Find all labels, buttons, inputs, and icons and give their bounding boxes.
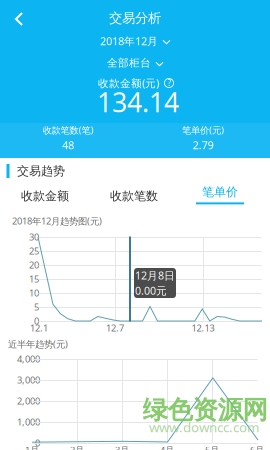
- button[interactable]: Back: [4, 5, 34, 33]
- staticText: 5月: [205, 444, 219, 450]
- staticText: 绿色资源网: [142, 394, 267, 425]
- button[interactable]: 全部柜台: [103, 53, 167, 72]
- staticText: 134.14: [97, 84, 179, 120]
- staticText: 25: [29, 245, 39, 257]
- staticText: 6月: [250, 444, 264, 450]
- staticText: 12月8日: [135, 268, 175, 282]
- button[interactable]: 收款金额(元): [95, 74, 177, 92]
- staticText: 笔单价(元): [182, 124, 224, 136]
- staticText: www.downcc.com: [149, 418, 259, 436]
- staticText: 4月: [160, 444, 174, 450]
- staticText: 收款笔数: [110, 189, 158, 203]
- staticText: 3月: [115, 444, 129, 450]
- staticText: 15: [29, 273, 39, 285]
- staticText: 2018年12月: [100, 34, 158, 48]
- staticText: 近半年趋势(元): [8, 338, 68, 350]
- staticText: 5: [34, 301, 39, 313]
- staticText: 收款金额(元): [98, 76, 159, 90]
- staticText: 0: [34, 315, 39, 327]
- staticText: 全部柜台: [107, 56, 151, 69]
- staticText: 1,000: [17, 416, 40, 428]
- staticText: 12.13: [191, 322, 214, 334]
- staticText: ?: [167, 77, 170, 88]
- staticText: 收款笔数(笔): [42, 124, 93, 136]
- staticText: 1月: [25, 444, 39, 450]
- staticText: 3,000: [17, 374, 40, 386]
- staticText: 48: [62, 138, 74, 152]
- staticText: 收款金额: [21, 189, 69, 203]
- button[interactable]: 笔单价: [182, 184, 258, 210]
- staticText: 12.1: [30, 322, 48, 334]
- staticText: 0: [35, 437, 40, 449]
- staticText: 0.00元: [135, 283, 167, 298]
- button[interactable]: 2018年12月: [96, 31, 174, 51]
- staticText: 2018年12月趋势图(元): [12, 215, 102, 227]
- staticText: 交易分析: [109, 10, 161, 26]
- staticText: 交易趋势: [17, 164, 65, 178]
- staticText: 20: [29, 259, 39, 271]
- staticText: 2.79: [192, 138, 213, 152]
- staticText: 2,000: [17, 395, 40, 407]
- button[interactable]: 收款笔数: [96, 184, 172, 208]
- staticText: 12.7: [106, 322, 124, 334]
- staticText: 4,000: [17, 353, 40, 365]
- staticText: 10: [29, 287, 39, 299]
- staticText: 笔单价: [202, 185, 238, 199]
- staticText: 2月: [70, 444, 84, 450]
- staticText: 30: [29, 231, 39, 243]
- button[interactable]: 收款金额: [7, 184, 83, 208]
